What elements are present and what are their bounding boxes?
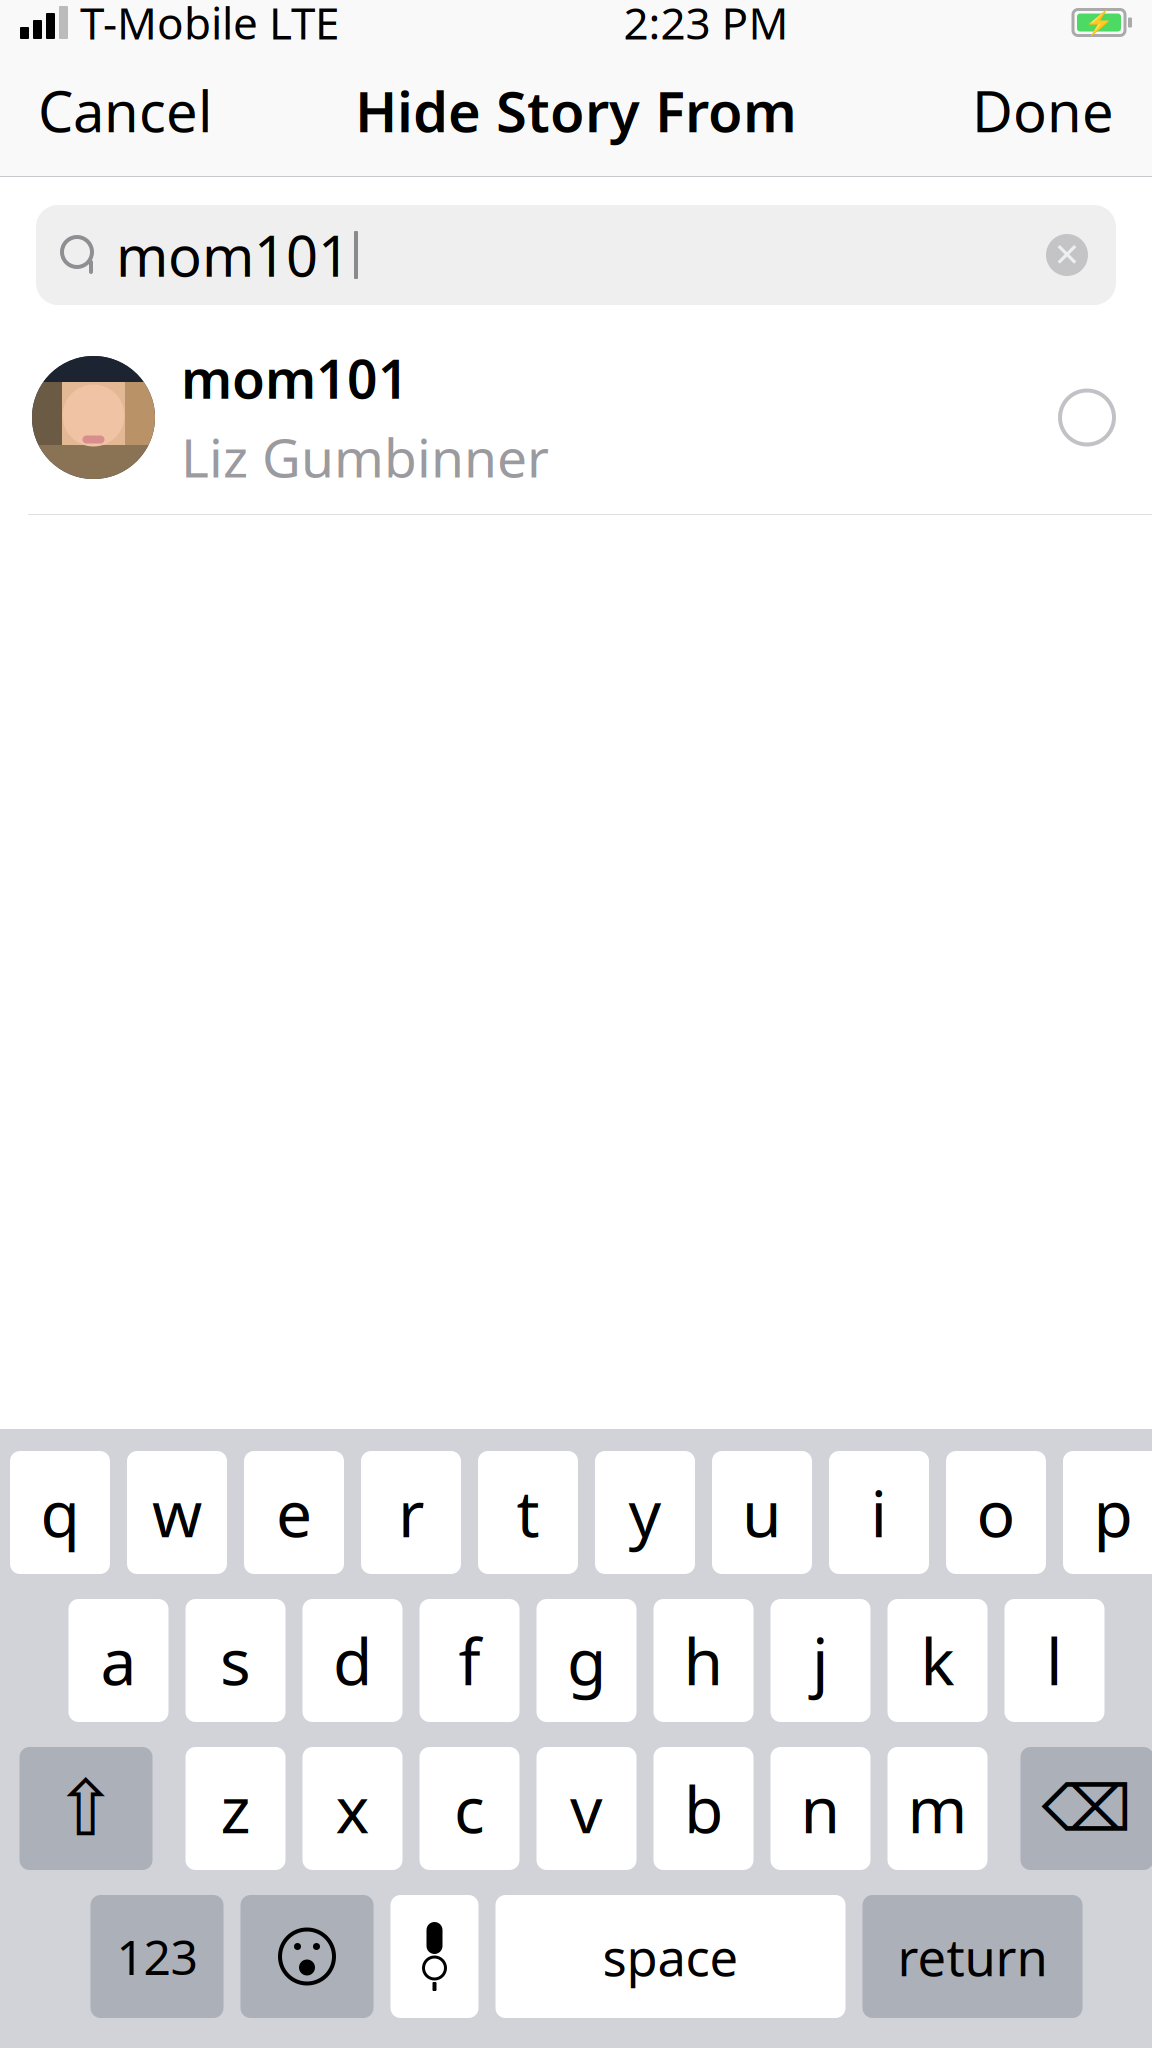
- button[interactable]: k: [887, 1599, 987, 1722]
- staticText: ⚡: [1084, 9, 1114, 36]
- staticText: Liz Gumbinner: [181, 421, 549, 492]
- button[interactable]: a: [68, 1599, 168, 1722]
- staticText: 2:23 PM: [623, 0, 788, 52]
- staticText: mom101: [181, 343, 409, 413]
- button[interactable]: 123: [90, 1895, 223, 2018]
- staticText: b: [684, 1766, 723, 1851]
- staticText: ⇧: [53, 1765, 118, 1852]
- button[interactable]: j: [770, 1599, 870, 1722]
- button[interactable]: g: [536, 1599, 636, 1722]
- staticText: g: [567, 1618, 606, 1703]
- staticText: y: [628, 1470, 661, 1555]
- staticText: q: [40, 1470, 79, 1555]
- button[interactable]: Emoji: [240, 1895, 373, 2018]
- button[interactable]: Delete: [1020, 1747, 1152, 1870]
- staticText: l: [1046, 1618, 1063, 1703]
- staticText: n: [800, 1766, 840, 1851]
- button[interactable]: z: [185, 1747, 285, 1870]
- button[interactable]: e: [244, 1451, 344, 1574]
- staticText: z: [220, 1766, 250, 1851]
- staticText: ⌫: [1041, 1772, 1132, 1845]
- button[interactable]: h: [653, 1599, 753, 1722]
- staticText: c: [454, 1766, 485, 1851]
- button[interactable]: u: [712, 1451, 812, 1574]
- button[interactable]: t: [478, 1451, 578, 1574]
- staticText: w: [152, 1470, 202, 1555]
- staticText: o: [976, 1470, 1015, 1555]
- button[interactable]: d: [302, 1599, 402, 1722]
- button[interactable]: x: [302, 1747, 402, 1870]
- button[interactable]: i: [829, 1451, 929, 1574]
- button[interactable]: m: [887, 1747, 987, 1870]
- button[interactable]: r: [361, 1451, 461, 1574]
- button[interactable]: y: [595, 1451, 695, 1574]
- button[interactable]: q: [10, 1451, 110, 1574]
- staticText: f: [458, 1618, 480, 1703]
- button[interactable]: Dictate: [390, 1895, 478, 2018]
- button[interactable]: v: [536, 1747, 636, 1870]
- staticText: return: [897, 1923, 1047, 1990]
- button[interactable]: Cancel: [18, 59, 232, 162]
- staticText: s: [220, 1618, 251, 1703]
- staticText: r: [398, 1470, 424, 1555]
- staticText: mom101: [116, 218, 350, 292]
- staticText: h: [683, 1618, 723, 1703]
- button[interactable]: n: [770, 1747, 870, 1870]
- staticText: d: [333, 1618, 372, 1703]
- button[interactable]: space: [495, 1895, 845, 2018]
- button[interactable]: c: [419, 1747, 519, 1870]
- staticText: i: [870, 1470, 887, 1555]
- button[interactable]: return: [862, 1895, 1082, 2018]
- staticText: a: [100, 1618, 136, 1703]
- button[interactable]: f: [419, 1599, 519, 1722]
- staticText: Cancel: [38, 73, 212, 148]
- staticText: t: [516, 1470, 539, 1555]
- staticText: T-Mobile LTE: [80, 0, 339, 52]
- staticText: space: [602, 1923, 738, 1990]
- staticText: m: [907, 1766, 967, 1851]
- staticText: Done: [972, 73, 1114, 148]
- button[interactable]: w: [127, 1451, 227, 1574]
- button[interactable]: Shift: [19, 1747, 152, 1870]
- button[interactable]: s: [185, 1599, 285, 1722]
- staticText: k: [920, 1618, 954, 1703]
- button[interactable]: p: [1063, 1451, 1152, 1574]
- button[interactable]: o: [946, 1451, 1046, 1574]
- staticText: Hide Story From: [355, 73, 797, 148]
- staticText: e: [276, 1470, 312, 1555]
- staticText: u: [742, 1470, 782, 1555]
- button[interactable]: Done: [952, 59, 1134, 162]
- button[interactable]: b: [653, 1747, 753, 1870]
- button[interactable]: Clear search: [1032, 220, 1102, 290]
- staticText: v: [570, 1766, 603, 1851]
- staticText: j: [812, 1618, 829, 1703]
- button[interactable]: mom101: [0, 321, 1152, 514]
- staticText: ✕: [1053, 237, 1080, 273]
- staticText: x: [335, 1766, 369, 1851]
- staticText: p: [1093, 1470, 1132, 1555]
- staticText: 123: [116, 1925, 197, 1988]
- button[interactable]: l: [1004, 1599, 1104, 1722]
